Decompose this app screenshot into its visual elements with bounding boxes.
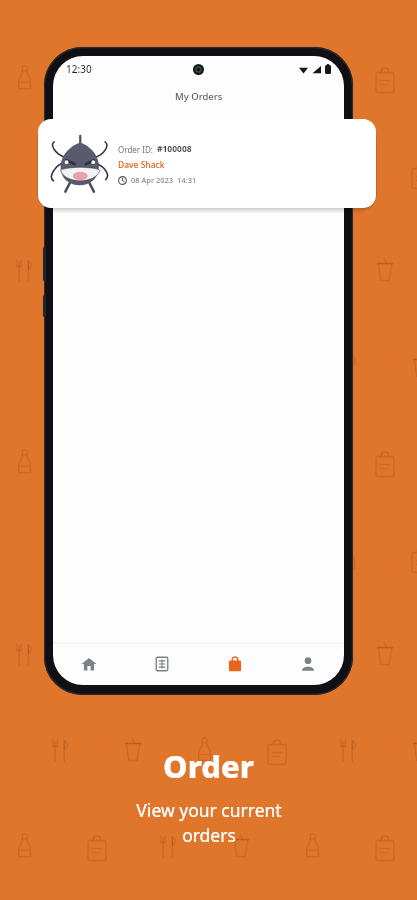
staticText: #100008 bbox=[157, 143, 192, 155]
staticText: 08 Apr 2023 14:31 bbox=[131, 175, 197, 185]
staticText: My Orders bbox=[175, 90, 223, 103]
staticText: 12:30 bbox=[66, 62, 92, 76]
staticText: Dave Shack bbox=[118, 159, 165, 171]
button[interactable]: Home bbox=[53, 643, 125, 685]
button[interactable]: Restaurants bbox=[125, 643, 198, 685]
staticText: Order ID: bbox=[118, 144, 153, 155]
staticText: Order bbox=[163, 745, 254, 787]
button[interactable]: Profile bbox=[271, 643, 344, 685]
button[interactable]: Order ID: bbox=[38, 119, 376, 208]
button[interactable]: Orders bbox=[198, 643, 271, 685]
staticText: View your current orders bbox=[136, 798, 282, 848]
